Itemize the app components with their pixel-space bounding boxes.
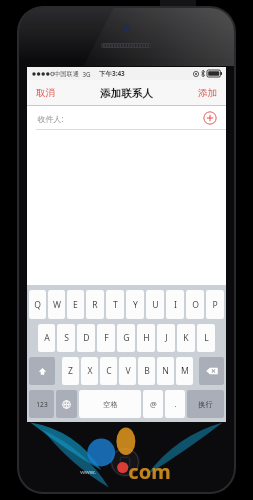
button[interactable]: Add contact	[203, 111, 217, 125]
button[interactable]: 取消	[34, 85, 57, 101]
staticText: Q	[34, 299, 41, 311]
staticText: I	[174, 299, 177, 311]
staticText: 下午3:43	[99, 69, 125, 78]
staticText: L	[204, 332, 209, 344]
button[interactable]: C	[100, 357, 117, 385]
button[interactable]: O	[186, 290, 204, 319]
button[interactable]: V	[119, 357, 136, 385]
staticText: K	[183, 332, 189, 344]
staticText: @	[150, 399, 157, 409]
button[interactable]: B	[138, 357, 155, 385]
button[interactable]: Shift	[29, 357, 55, 385]
button[interactable]: 123	[29, 390, 54, 418]
button[interactable]: G	[117, 324, 135, 352]
staticText: 取消	[36, 87, 55, 99]
button[interactable]: J	[157, 324, 175, 352]
button[interactable]: Backspace	[199, 357, 224, 385]
staticText: J	[165, 332, 168, 344]
button[interactable]: 收件人:	[27, 106, 226, 130]
button[interactable]: U	[146, 290, 164, 319]
staticText: D	[83, 332, 90, 344]
button[interactable]: X	[81, 357, 98, 385]
staticText: 添加	[198, 87, 217, 99]
staticText: H	[143, 332, 150, 344]
staticText: N	[162, 365, 169, 377]
staticText: A	[44, 332, 50, 344]
staticText: 换行	[198, 400, 213, 409]
staticText: 空格	[103, 400, 118, 409]
staticText: G	[123, 332, 130, 344]
button[interactable]: @	[143, 390, 163, 418]
staticText: Z	[68, 365, 73, 377]
staticText: E	[73, 299, 78, 311]
staticText: 添加联系人	[100, 87, 153, 100]
button[interactable]: L	[197, 324, 215, 352]
button[interactable]: 空格	[79, 390, 141, 418]
staticText: W	[53, 299, 61, 311]
staticText: O	[192, 299, 199, 311]
button[interactable]: Q	[29, 290, 46, 319]
button[interactable]: D	[77, 324, 95, 352]
staticText: V	[125, 365, 131, 377]
button[interactable]: A	[38, 324, 55, 352]
button[interactable]: E	[67, 290, 84, 319]
button[interactable]: Z	[62, 357, 79, 385]
button[interactable]: P	[206, 290, 224, 319]
staticText: M	[181, 365, 189, 377]
button[interactable]: I	[166, 290, 184, 319]
button[interactable]: 换行	[187, 390, 224, 418]
button[interactable]: Y	[126, 290, 144, 319]
button[interactable]: S	[57, 324, 75, 352]
staticText: 收件人:	[37, 113, 64, 124]
staticText: 3G	[82, 70, 91, 78]
button[interactable]: .	[165, 390, 185, 418]
staticText: Y	[133, 299, 138, 311]
button[interactable]: H	[137, 324, 155, 352]
button[interactable]: R	[86, 290, 104, 319]
staticText: F	[104, 332, 109, 344]
staticText: P	[212, 299, 218, 311]
staticText: X	[87, 365, 93, 377]
button[interactable]: T	[106, 290, 124, 319]
staticText: B	[144, 365, 150, 377]
button[interactable]: K	[177, 324, 195, 352]
button[interactable]: 添加	[196, 85, 219, 101]
staticText: 中国联通	[54, 70, 79, 78]
button[interactable]: N	[157, 357, 174, 385]
staticText: T	[113, 299, 118, 311]
button[interactable]: W	[48, 290, 65, 319]
button[interactable]: Change keyboard language	[56, 390, 77, 418]
staticText: C	[106, 365, 112, 377]
staticText: U	[152, 299, 159, 311]
staticText: 123	[36, 400, 48, 409]
staticText: R	[92, 299, 98, 311]
button[interactable]: F	[97, 324, 115, 352]
staticText: com	[128, 458, 171, 485]
staticText: .	[174, 399, 177, 409]
staticText: www.	[80, 468, 96, 476]
staticText: S	[64, 332, 69, 344]
button[interactable]: M	[176, 357, 193, 385]
